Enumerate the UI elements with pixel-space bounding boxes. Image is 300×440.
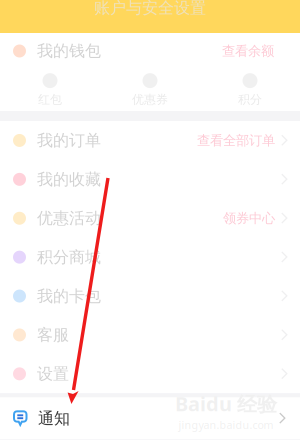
staticText: 红包 — [38, 92, 62, 107]
button[interactable]: 优惠活动 — [0, 199, 300, 238]
staticText: 客服 — [37, 325, 69, 345]
button[interactable]: 我的收藏 — [0, 160, 300, 199]
button[interactable]: 我的订单 — [0, 121, 300, 160]
staticText: 我的卡包 — [37, 286, 101, 306]
button[interactable]: 设置 — [0, 354, 300, 393]
button[interactable]: 客服 — [0, 315, 300, 354]
staticText: 积分 — [238, 92, 262, 107]
button[interactable]: 我的钱包 — [0, 33, 300, 69]
staticText: 查看全部订单 — [197, 132, 275, 149]
staticText: jingyan.baidu.com — [178, 418, 273, 432]
staticText: 优惠券 — [132, 92, 168, 107]
button[interactable]: 积分商城 — [0, 238, 300, 277]
button[interactable]: 优惠券 — [100, 69, 200, 111]
staticText: 优惠活动 — [37, 208, 101, 228]
staticText: 领券中心 — [223, 210, 275, 226]
staticText: 通知 — [38, 408, 70, 428]
button[interactable]: 红包 — [0, 69, 100, 111]
staticText: 我的钱包 — [37, 41, 101, 61]
staticText: 积分商城 — [37, 247, 101, 267]
staticText: 查看余额 — [222, 43, 274, 59]
staticText: Baidu 经验 — [175, 390, 277, 417]
button[interactable]: 通知 — [0, 397, 300, 439]
staticText: 设置 — [37, 364, 69, 384]
staticText: 我的收藏 — [37, 169, 101, 189]
button[interactable]: 我的卡包 — [0, 277, 300, 315]
button[interactable]: 积分 — [200, 69, 300, 111]
staticText: 我的订单 — [37, 131, 101, 150]
staticText: 账户与安全设置 — [94, 0, 206, 18]
